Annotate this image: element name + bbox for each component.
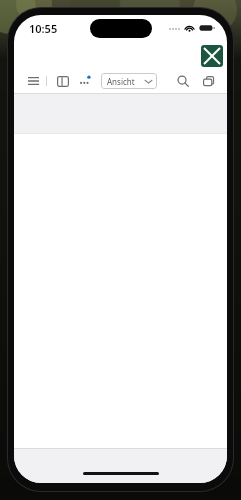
- staticText: 10:55: [29, 21, 58, 36]
- button[interactable]: Menu: [23, 70, 43, 92]
- button[interactable]: App icon: [201, 45, 223, 67]
- button[interactable]: Ansicht: [101, 73, 157, 89]
- button[interactable]: More options: [75, 70, 95, 92]
- button[interactable]: Tabs: [197, 70, 221, 92]
- button[interactable]: Sidebar: [52, 70, 73, 92]
- staticText: Ansicht: [107, 76, 135, 87]
- button[interactable]: Search: [171, 70, 195, 92]
